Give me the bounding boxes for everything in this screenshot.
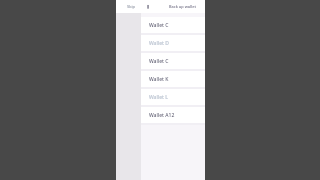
button[interactable]: Wallet D xyxy=(141,35,205,51)
staticText: Wallet K xyxy=(149,76,169,83)
button[interactable]: Wallet C xyxy=(141,17,205,33)
staticText: Wallet L xyxy=(149,94,168,101)
staticText: Wallet A12 xyxy=(149,112,175,119)
staticText: Wallet C xyxy=(149,58,169,65)
button[interactable]: Wallet A12 xyxy=(141,107,205,123)
button[interactable]: Skip xyxy=(125,2,138,12)
button[interactable]: Wallet K xyxy=(141,71,205,87)
staticText: Back up wallet xyxy=(169,4,196,9)
staticText: Skip xyxy=(127,4,136,10)
staticText: Wallet D xyxy=(149,40,169,47)
button[interactable]: Wallet C xyxy=(141,53,205,69)
button[interactable]: Help xyxy=(145,4,151,10)
staticText: Wallet C xyxy=(149,22,169,29)
button[interactable]: Wallet L xyxy=(141,89,205,105)
